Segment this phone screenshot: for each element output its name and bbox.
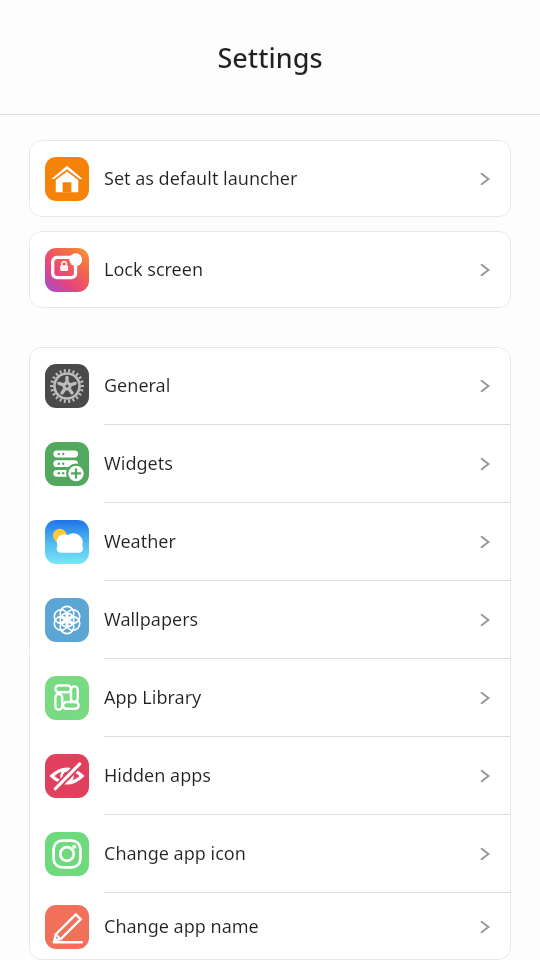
button[interactable]: Change app name xyxy=(29,893,511,960)
button[interactable]: Change app icon xyxy=(29,815,511,892)
button[interactable]: Set as default launcher xyxy=(29,140,511,217)
staticText: Wallpapers xyxy=(104,607,473,632)
staticText: General xyxy=(104,373,473,398)
button[interactable]: Widgets xyxy=(29,425,511,502)
button[interactable]: Lock screen xyxy=(29,231,511,308)
button[interactable]: Weather xyxy=(29,503,511,580)
staticText: Change app icon xyxy=(104,841,473,866)
staticText: Hidden apps xyxy=(104,763,473,788)
button[interactable]: Hidden apps xyxy=(29,737,511,814)
staticText: App Library xyxy=(104,685,473,710)
staticText: Lock screen xyxy=(104,257,473,282)
staticText: Weather xyxy=(104,529,473,554)
staticText: Settings xyxy=(217,39,323,76)
staticText: Change app name xyxy=(104,914,473,939)
staticText: Widgets xyxy=(104,451,473,476)
staticText: Set as default launcher xyxy=(104,166,473,191)
button[interactable]: App Library xyxy=(29,659,511,736)
button[interactable]: General xyxy=(29,347,511,424)
button[interactable]: Wallpapers xyxy=(29,581,511,658)
